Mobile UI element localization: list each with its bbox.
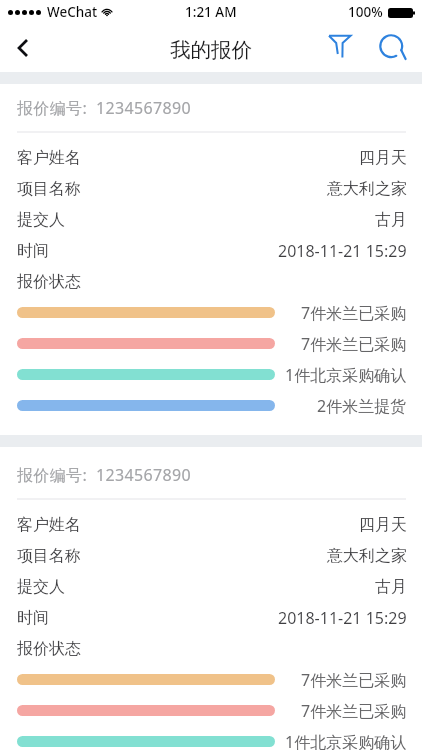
staticText: 客户姓名 — [17, 148, 81, 168]
staticText: 报价编号: 1234567890 — [17, 464, 192, 486]
staticText: 7件米兰已采购 — [301, 669, 407, 691]
staticText: 我的报价 — [170, 37, 252, 63]
staticText: 项目名称 — [17, 179, 81, 199]
staticText: 2件米兰提货 — [317, 395, 407, 417]
staticText: 7件米兰已采购 — [301, 333, 407, 355]
staticText: 7件米兰已采购 — [301, 302, 407, 324]
staticText: 2018-11-21 15:29 — [278, 240, 407, 262]
staticText: 报价状态 — [17, 272, 81, 292]
staticText: 2018-11-21 15:29 — [278, 607, 407, 629]
staticText: 时间 — [17, 241, 49, 261]
staticText: 意大利之家 — [327, 546, 407, 566]
button[interactable]: Back — [0, 28, 46, 72]
staticText: 古月 — [375, 577, 407, 597]
staticText: 提交人 — [17, 210, 65, 230]
staticText: 四月天 — [359, 515, 407, 535]
staticText: 100% — [348, 3, 383, 21]
staticText: 提交人 — [17, 577, 65, 597]
staticText: 报价状态 — [17, 639, 81, 659]
button[interactable]: Filter — [318, 28, 362, 72]
button[interactable]: Search — [369, 28, 413, 72]
staticText: 7件米兰已采购 — [301, 700, 407, 722]
staticText: 1:21 AM — [185, 3, 237, 21]
staticText: 客户姓名 — [17, 515, 81, 535]
staticText: 古月 — [375, 210, 407, 230]
staticText: 意大利之家 — [327, 179, 407, 199]
staticText: 项目名称 — [17, 546, 81, 566]
staticText: 1件北京采购确认 — [285, 364, 407, 386]
staticText: 时间 — [17, 608, 49, 628]
staticText: 报价编号: 1234567890 — [17, 97, 192, 119]
staticText: 1件北京采购确认 — [285, 731, 407, 750]
staticText: 四月天 — [359, 148, 407, 168]
staticText: WeChat — [47, 3, 98, 21]
